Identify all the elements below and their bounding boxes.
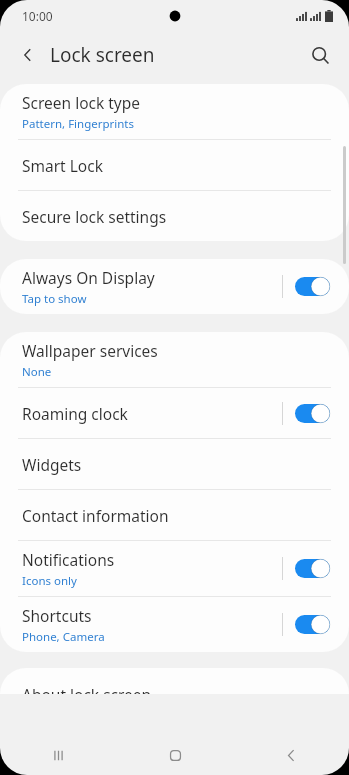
button[interactable]: Smart Lock — [0, 140, 349, 190]
button[interactable]: Toggle — [295, 559, 330, 578]
button[interactable]: Widgets — [0, 439, 349, 489]
button[interactable]: Screen lock type — [0, 84, 349, 139]
button[interactable]: Shortcuts — [0, 597, 349, 652]
button[interactable]: About lock screen — [0, 668, 349, 694]
button[interactable]: Wallpaper services — [0, 332, 349, 387]
staticText: Wallpaper services — [22, 340, 158, 361]
button[interactable]: Toggle — [282, 259, 330, 314]
staticText: Pattern, Fingerprints — [22, 116, 135, 132]
staticText: Widgets — [22, 454, 82, 475]
staticText: Contact information — [22, 505, 169, 526]
staticText: Icons only — [22, 573, 77, 589]
staticText: Secure lock settings — [22, 206, 167, 227]
button[interactable]: Toggle — [282, 597, 330, 652]
button[interactable]: Toggle — [282, 388, 330, 438]
staticText: Always On Display — [22, 267, 155, 288]
button[interactable]: Back — [10, 37, 46, 73]
button[interactable]: Toggle — [282, 541, 330, 596]
staticText: Phone, Camera — [22, 629, 105, 645]
staticText: 10:00 — [22, 8, 53, 24]
staticText: Screen lock type — [22, 92, 141, 113]
button[interactable]: Secure lock settings — [0, 191, 349, 241]
button[interactable]: Toggle — [295, 277, 330, 296]
button[interactable]: Notifications — [0, 541, 349, 596]
button[interactable]: Toggle — [295, 404, 330, 423]
staticText: Tap to show — [22, 291, 87, 307]
staticText: Lock screen — [50, 42, 155, 68]
staticText: None — [22, 364, 52, 380]
staticText: Shortcuts — [22, 605, 92, 626]
staticText: Smart Lock — [22, 155, 103, 176]
button[interactable]: Contact information — [0, 490, 349, 540]
staticText: About lock screen — [22, 684, 152, 694]
button[interactable]: Search — [302, 37, 338, 73]
button[interactable]: Always On Display — [0, 259, 349, 314]
button[interactable]: Roaming clock — [0, 388, 349, 438]
staticText: Roaming clock — [22, 403, 128, 424]
button[interactable]: Recents — [0, 735, 117, 775]
button[interactable]: Toggle — [295, 615, 330, 634]
button[interactable]: Back — [233, 735, 349, 775]
staticText: Notifications — [22, 549, 115, 570]
button[interactable]: Home — [117, 735, 233, 775]
